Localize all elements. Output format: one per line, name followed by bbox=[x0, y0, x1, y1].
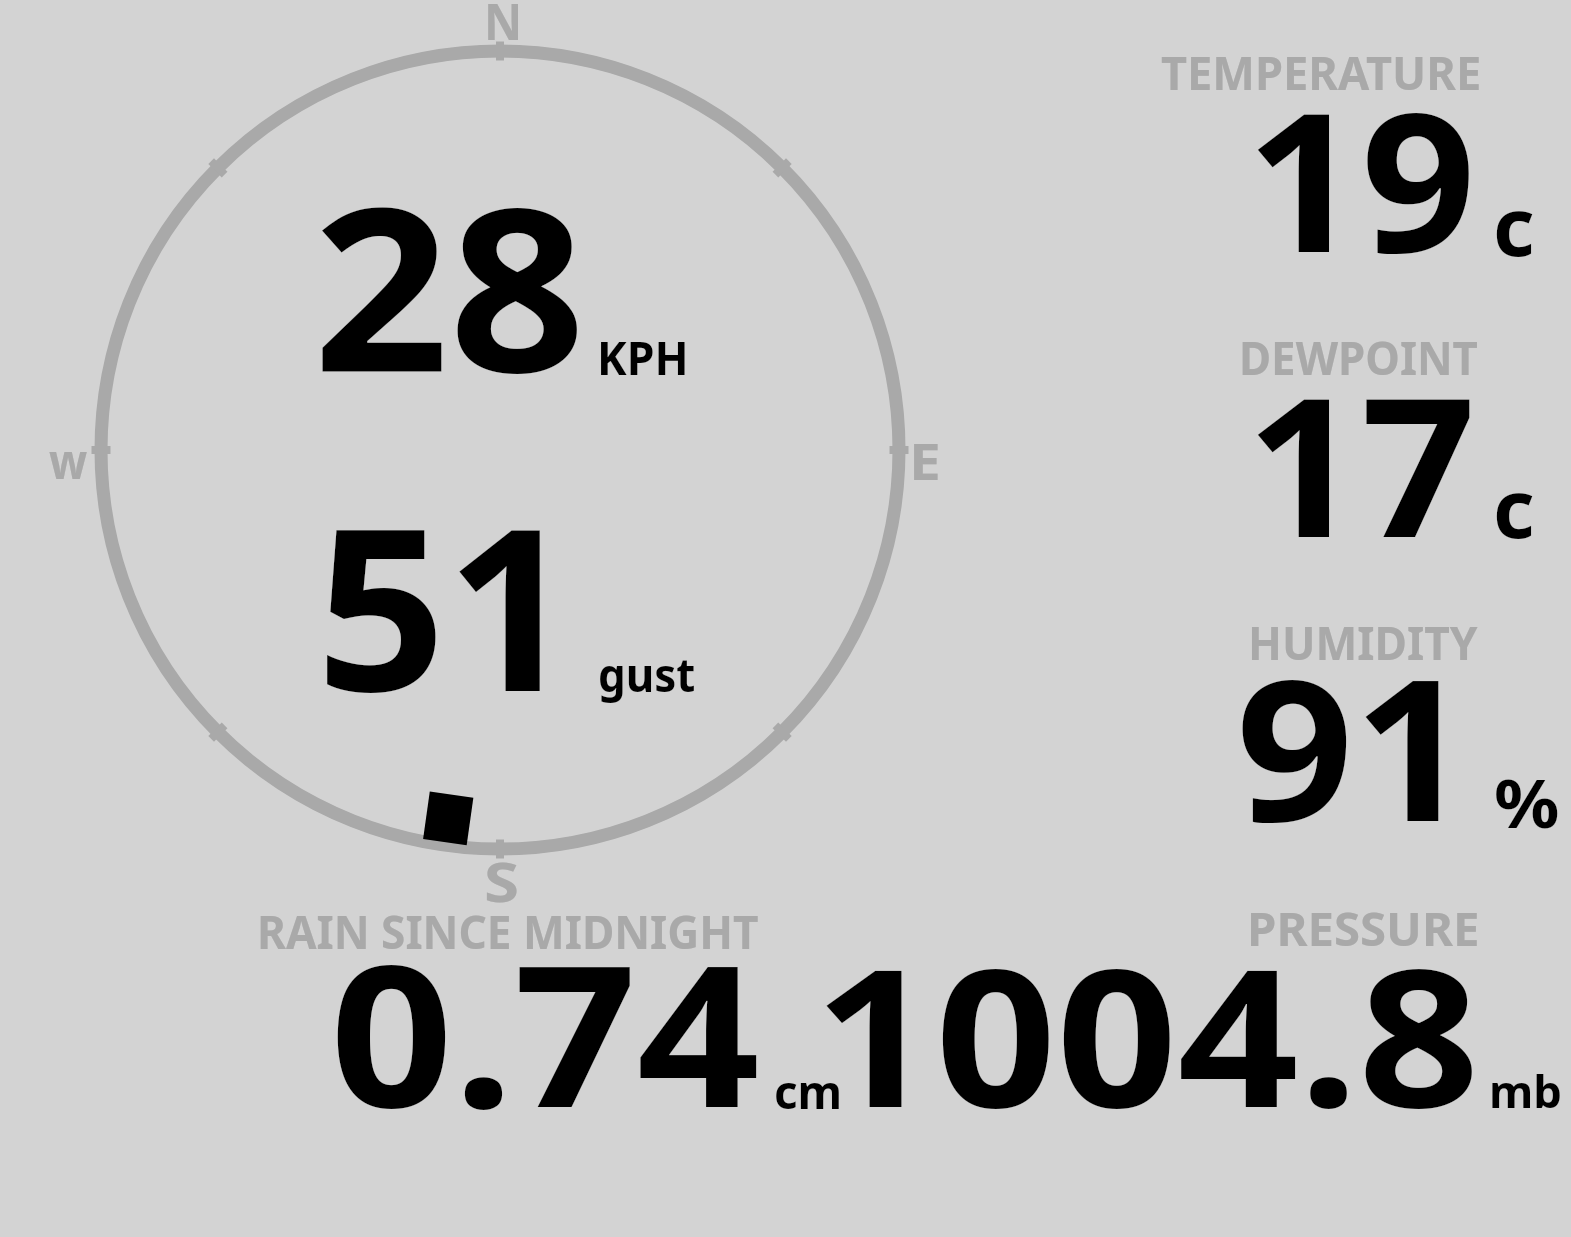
staticText: 91 bbox=[1236, 613, 1472, 879]
staticText: N bbox=[484, 0, 522, 55]
staticText: 0.74 bbox=[330, 899, 761, 1165]
button[interactable]: Rain since midnight 0.74 cm bbox=[240, 900, 800, 1130]
staticText: mb bbox=[1489, 1061, 1562, 1121]
button[interactable]: Wind direction compass, 28 KPH, gust 51 bbox=[96, 46, 904, 854]
staticText: HUMIDITY bbox=[1248, 611, 1478, 674]
button[interactable]: Dewpoint 17 C bbox=[1150, 320, 1571, 585]
staticText: S bbox=[484, 845, 520, 917]
staticText: PRESSURE bbox=[1247, 897, 1480, 960]
staticText: 19 bbox=[1246, 47, 1476, 309]
staticText: RAIN SINCE MIDNIGHT bbox=[257, 900, 759, 963]
staticText: 51 bbox=[316, 452, 577, 757]
staticText: c bbox=[1493, 451, 1535, 561]
staticText: cm bbox=[774, 1060, 843, 1123]
staticText: 28 bbox=[313, 130, 586, 438]
button[interactable]: Temperature 19 C bbox=[1150, 40, 1571, 300]
button[interactable]: Pressure 1004.8 mb bbox=[810, 900, 1571, 1130]
button[interactable]: Humidity 91 percent bbox=[1150, 600, 1571, 870]
staticText: gust bbox=[598, 643, 696, 706]
staticText: KPH bbox=[597, 325, 689, 389]
staticText: 17 bbox=[1246, 332, 1476, 594]
staticText: w bbox=[49, 428, 88, 493]
staticText: TEMPERATURE bbox=[1161, 41, 1482, 104]
staticText: DEWPOINT bbox=[1239, 326, 1478, 389]
staticText: % bbox=[1494, 757, 1560, 847]
staticText: c bbox=[1493, 169, 1535, 279]
staticText: E bbox=[909, 427, 941, 495]
staticText: 1004.8 bbox=[814, 903, 1479, 1163]
